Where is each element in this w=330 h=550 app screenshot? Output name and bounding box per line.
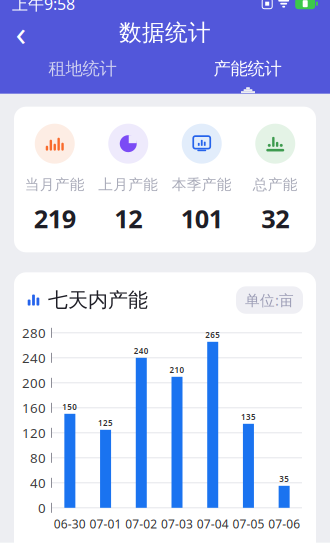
staticText: 32 <box>261 202 289 235</box>
staticText: 上午9:58 <box>12 0 75 14</box>
staticText: 06-30 <box>54 516 86 532</box>
staticText: 产能统计 <box>213 58 281 79</box>
staticText: 07-05 <box>232 516 264 532</box>
staticText: 35 <box>279 474 289 484</box>
staticText: 租地统计 <box>48 58 116 79</box>
staticText: 总产能 <box>253 176 298 194</box>
staticText: 219 <box>34 202 76 235</box>
staticText: 07-01 <box>90 516 122 532</box>
staticText: 07-04 <box>197 516 229 532</box>
staticText: 数据统计 <box>119 19 211 47</box>
staticText: 135 <box>241 412 256 422</box>
staticText: 265 <box>205 330 220 340</box>
staticText: 80 <box>30 449 46 467</box>
staticText: 七天内产能 <box>48 288 148 312</box>
staticText: 07-06 <box>268 516 300 532</box>
button[interactable]: 租地统计 <box>0 51 165 87</box>
staticText: 160 <box>22 399 46 417</box>
staticText: 07-02 <box>125 516 157 532</box>
button[interactable]: 产能统计 <box>165 51 330 87</box>
staticText: 240 <box>22 349 46 367</box>
staticText: 280 <box>22 324 46 342</box>
staticText: 240 <box>134 346 149 356</box>
staticText: 40 <box>30 474 46 492</box>
staticText: 本季产能 <box>172 176 232 194</box>
staticText: ‹ <box>15 10 26 56</box>
staticText: 0 <box>38 499 46 517</box>
staticText: 120 <box>22 424 46 442</box>
staticText: 125 <box>98 418 113 428</box>
staticText: 101 <box>181 202 223 235</box>
staticText: 07-03 <box>161 516 193 532</box>
staticText: 150 <box>62 402 77 412</box>
staticText: 上月产能 <box>98 176 158 194</box>
button[interactable]: Back <box>0 15 42 51</box>
staticText: 210 <box>169 365 184 375</box>
staticText: 12 <box>114 202 142 235</box>
staticText: 200 <box>22 374 46 392</box>
staticText: 单位:亩 <box>245 290 294 310</box>
staticText: 当月产能 <box>25 176 85 194</box>
